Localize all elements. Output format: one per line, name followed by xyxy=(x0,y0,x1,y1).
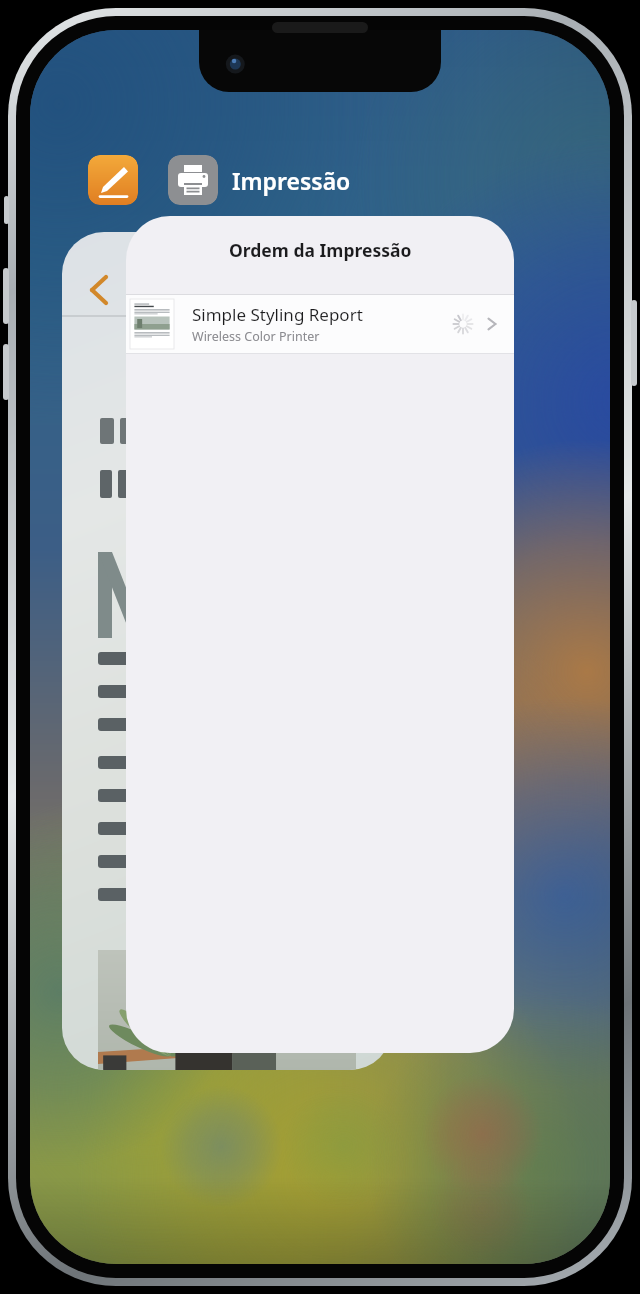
button[interactable]: Ordem da Impressão xyxy=(126,216,514,1053)
staticText: Wireless Color Printer xyxy=(192,328,320,345)
staticText: Ordem da Impressão xyxy=(229,238,412,262)
button[interactable]: Simple Styling Report xyxy=(126,295,514,353)
staticText: Simple Styling Report xyxy=(192,303,363,326)
button[interactable]: Print xyxy=(168,155,218,205)
staticText: Impressão xyxy=(232,165,351,196)
button[interactable] xyxy=(62,232,392,1070)
button[interactable]: Pages xyxy=(88,155,138,205)
